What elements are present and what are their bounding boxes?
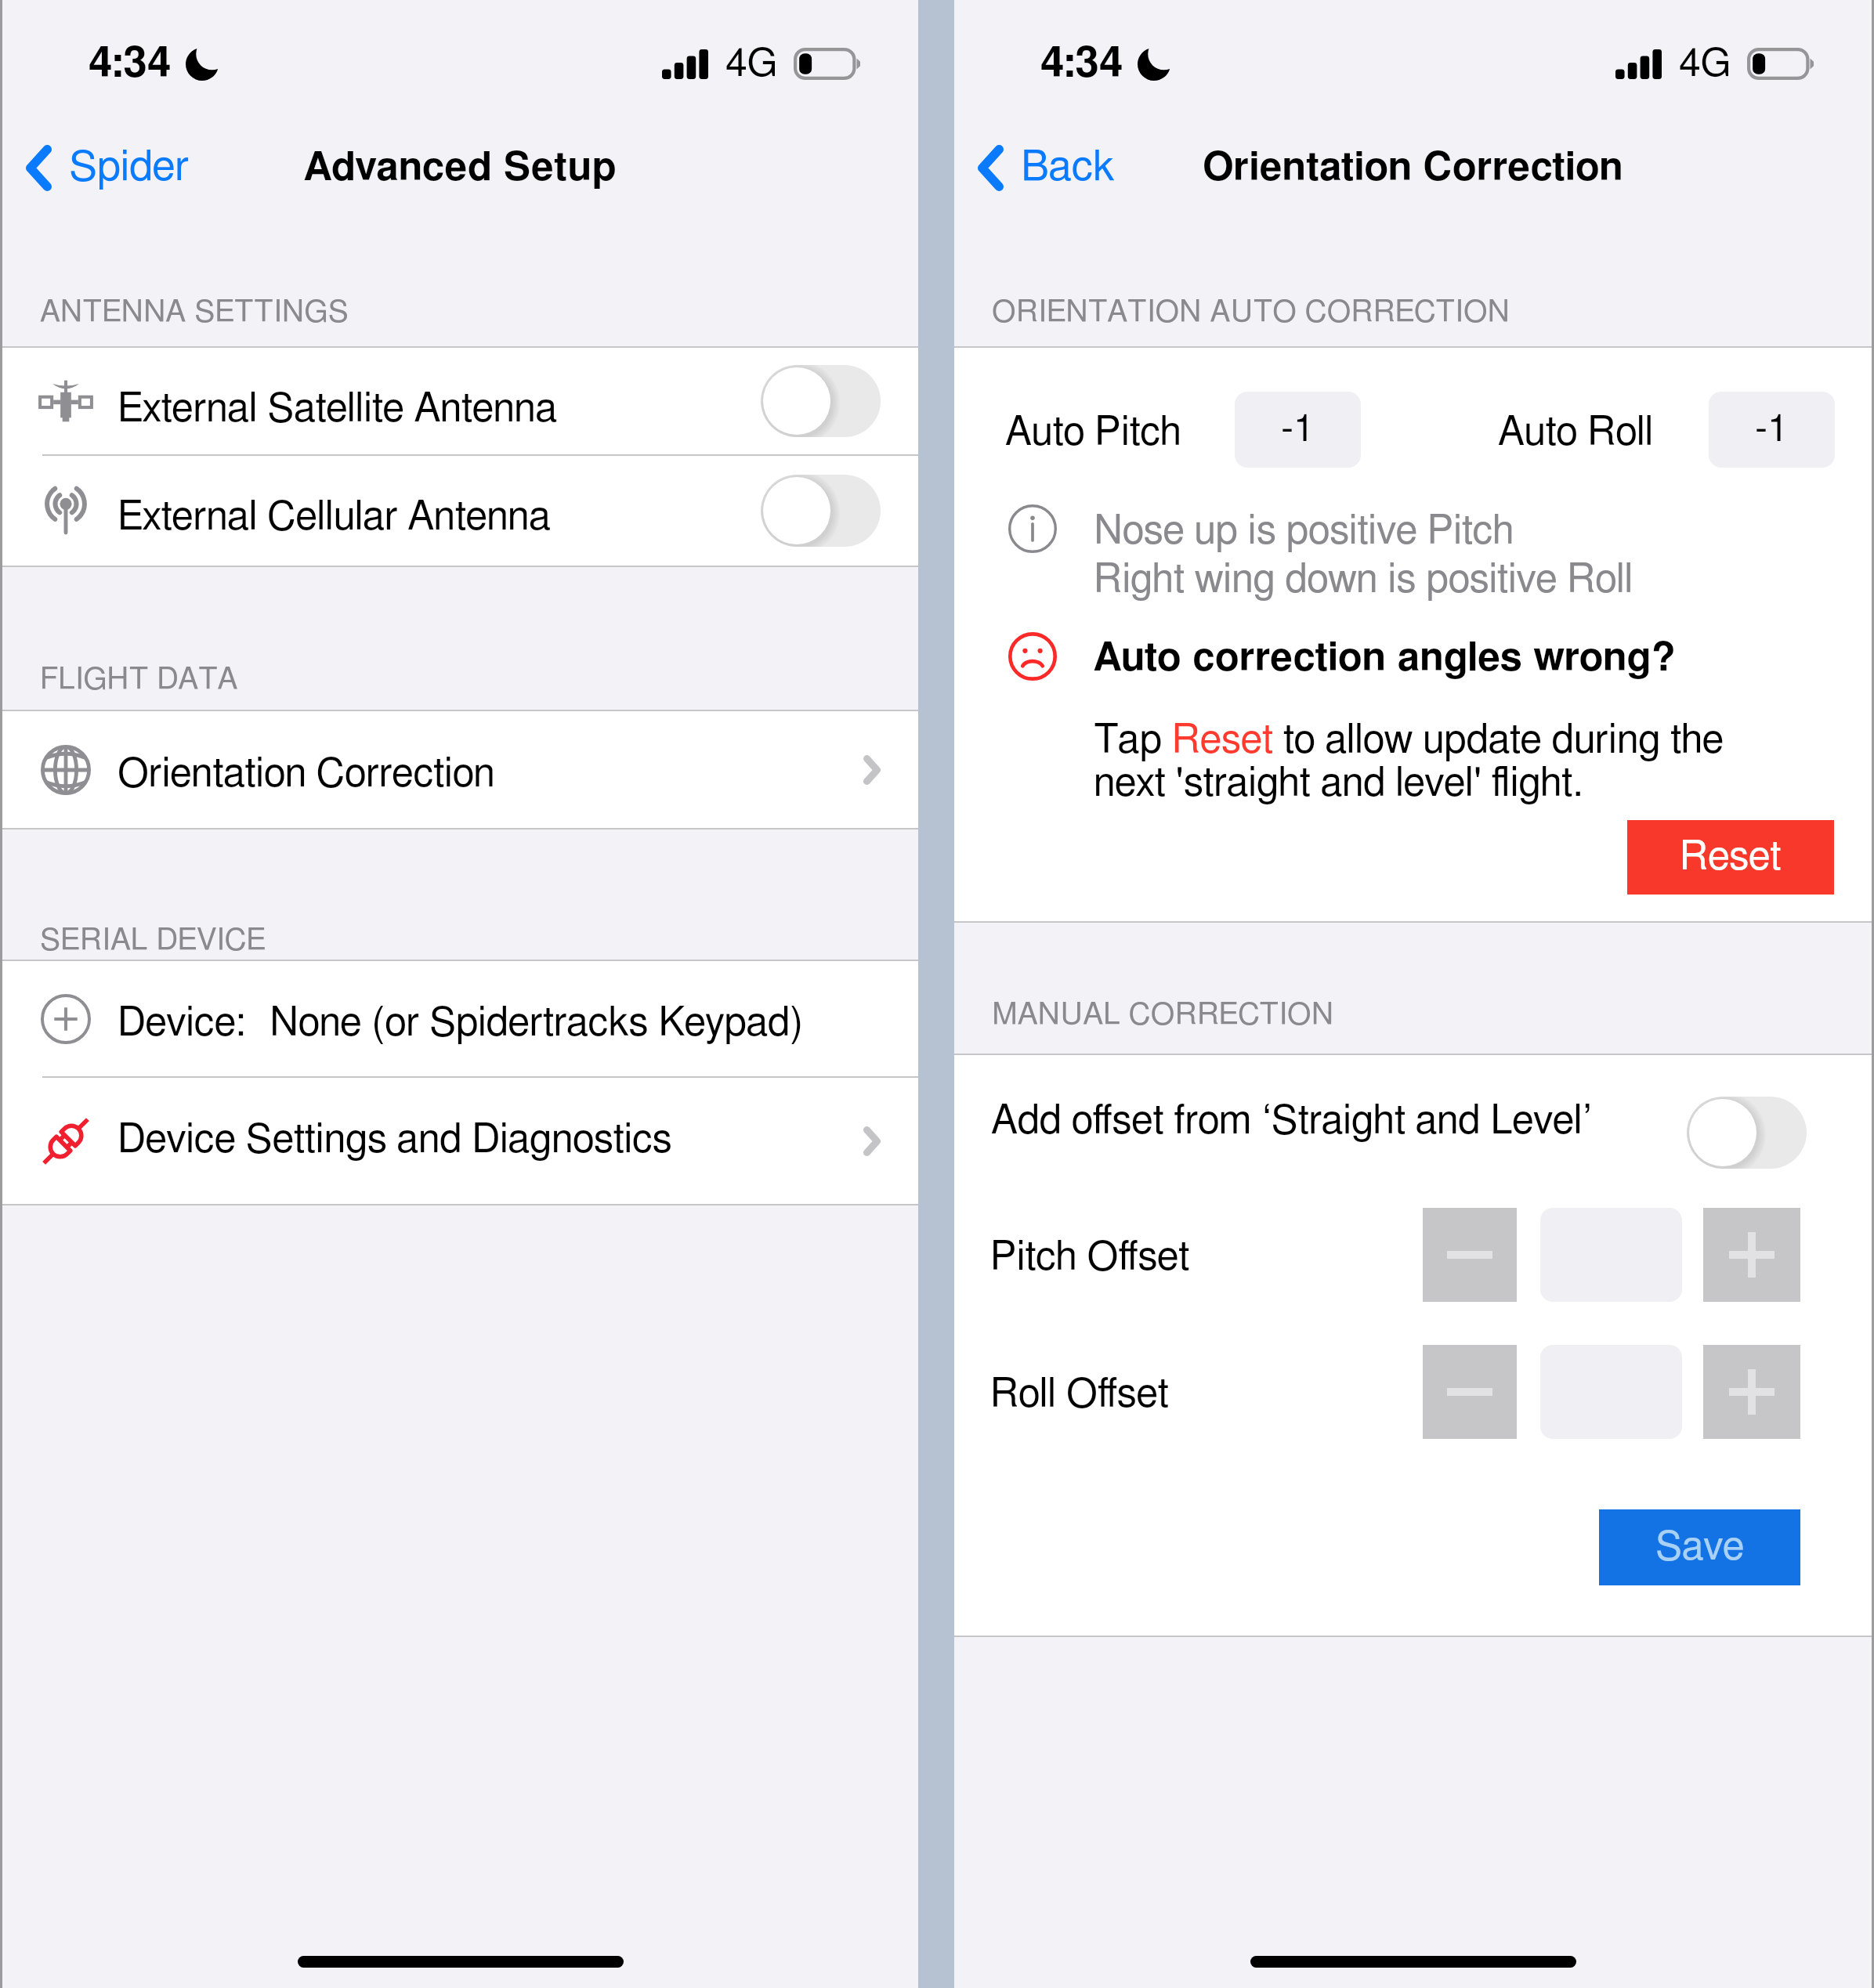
staticText: Auto Roll [1498, 413, 1654, 453]
button[interactable]: Toggle [761, 365, 881, 437]
staticText: -1 [1755, 411, 1789, 449]
staticText: Tap Reset to allow update during the nex… [1094, 721, 1756, 804]
button[interactable]: Back [977, 117, 1115, 218]
button[interactable]: Toggle [761, 475, 881, 547]
staticText: -1 [1281, 411, 1315, 449]
staticText: Spider [69, 146, 190, 189]
staticText: 4:34 [1040, 42, 1123, 85]
staticText: Advanced Setup [304, 148, 617, 188]
staticText: Right wing down is positive Roll [1094, 560, 1633, 600]
staticText: ORIENTATION AUTO CORRECTION [992, 297, 1510, 327]
staticText: Device: [118, 1003, 246, 1043]
staticText: Orientation Correction [1203, 148, 1624, 188]
staticText: Roll Offset [990, 1375, 1169, 1415]
staticText: Save [1655, 1527, 1745, 1567]
button[interactable]: Reset [1627, 820, 1834, 895]
staticText: Back [1021, 146, 1115, 189]
staticText: ANTENNA SETTINGS [40, 297, 349, 327]
staticText: None (or Spidertracks Keypad) [270, 1003, 804, 1043]
staticText: Pitch Offset [990, 1238, 1190, 1278]
button[interactable]: Toggle [1687, 1097, 1807, 1169]
button[interactable]: Device: [2, 961, 918, 1076]
button[interactable]: Increase [1703, 1208, 1800, 1302]
staticText: 4G [725, 45, 778, 84]
button[interactable]: Decrease [1423, 1345, 1517, 1439]
staticText: External Cellular Antenna [118, 497, 551, 537]
staticText: External Satellite Antenna [118, 389, 558, 429]
staticText: Device Settings and Diagnostics [118, 1120, 672, 1160]
staticText: Auto Pitch [1005, 413, 1181, 453]
button[interactable]: Increase [1703, 1345, 1800, 1439]
button[interactable]: Device Settings and Diagnostics [2, 1078, 918, 1204]
staticText: Orientation Correction [118, 754, 495, 794]
staticText: MANUAL CORRECTION [992, 999, 1334, 1030]
button[interactable]: Orientation Correction [2, 711, 918, 828]
staticText: 4:34 [89, 42, 172, 85]
button[interactable]: Save [1599, 1509, 1800, 1585]
button[interactable]: Spider [25, 117, 190, 218]
staticText: SERIAL DEVICE [40, 925, 266, 956]
staticText: Nose up is positive Pitch [1094, 511, 1514, 551]
staticText: Add offset from ‘Straight and Level’ [991, 1101, 1593, 1141]
staticText: FLIGHT DATA [40, 664, 239, 695]
staticText: Auto correction angles wrong? [1094, 638, 1676, 678]
button[interactable]: Decrease [1423, 1208, 1517, 1302]
staticText: 4G [1679, 45, 1731, 84]
staticText: Reset [1680, 837, 1782, 877]
button[interactable]: External Cellular Antenna [2, 456, 918, 566]
button[interactable]: External Satellite Antenna [2, 348, 918, 454]
